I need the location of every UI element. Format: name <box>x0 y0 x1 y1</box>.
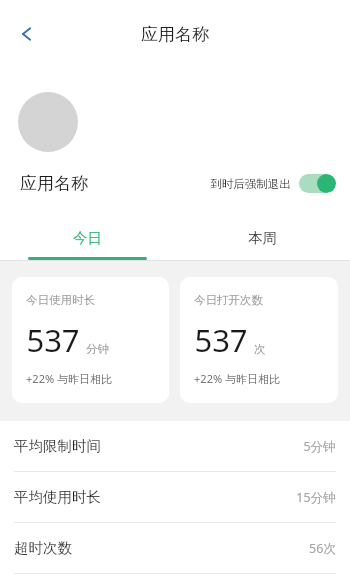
staticText: 5分钟 <box>303 438 336 455</box>
button[interactable]: 超时次数 <box>0 523 350 573</box>
button[interactable]: 今日 <box>0 216 175 260</box>
staticText: 56次 <box>309 540 336 557</box>
staticText: 到时后强制退出 <box>210 177 291 191</box>
staticText: +22% 与昨日相比 <box>26 371 112 386</box>
staticText: 537 <box>194 319 248 361</box>
button[interactable]: 今日打开次数 <box>180 277 338 403</box>
button[interactable]: 今日使用时长 <box>12 277 169 403</box>
button[interactable]: 平均使用时长 <box>0 472 350 522</box>
staticText: +22% 与昨日相比 <box>194 371 280 386</box>
staticText: 本周 <box>248 229 277 247</box>
staticText: 应用名称 <box>20 173 88 194</box>
staticText: 537 <box>26 319 80 361</box>
staticText: 超时次数 <box>14 539 72 557</box>
staticText: 今日 <box>73 229 102 247</box>
staticText: 应用名称 <box>141 24 209 45</box>
staticText: 今日使用时长 <box>26 293 95 307</box>
staticText: 平均限制时间 <box>14 437 101 455</box>
staticText: 次 <box>254 342 266 356</box>
button[interactable]: 本周 <box>175 216 350 260</box>
button[interactable]: 到时后强制退出 <box>210 174 336 193</box>
staticText: 平均使用时长 <box>14 488 101 506</box>
staticText: 今日打开次数 <box>194 293 263 307</box>
staticText: 分钟 <box>86 342 109 356</box>
button[interactable]: 平均限制时间 <box>0 421 350 471</box>
staticText: 15分钟 <box>296 489 336 506</box>
button[interactable]: Back <box>6 12 50 56</box>
